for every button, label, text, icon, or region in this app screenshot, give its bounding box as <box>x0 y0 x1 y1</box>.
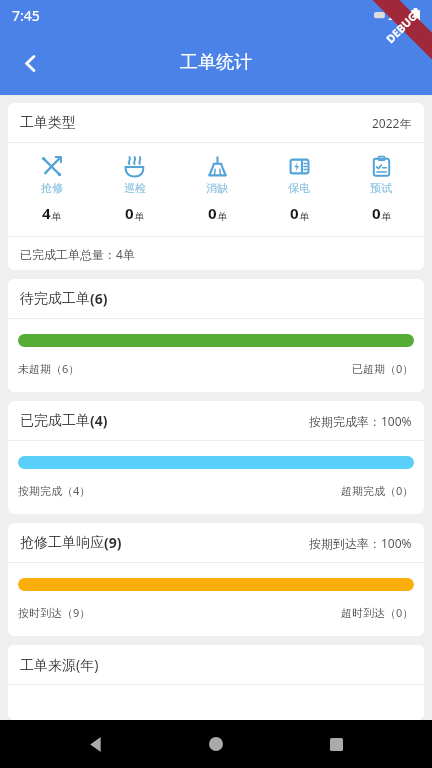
button[interactable]: 消缺 <box>176 154 258 223</box>
button[interactable]: Home <box>192 720 240 768</box>
staticText: 单 <box>134 210 144 223</box>
button[interactable]: 保电 <box>258 154 340 223</box>
button[interactable]: Recent apps <box>312 720 360 768</box>
staticText: 单 <box>51 210 61 223</box>
staticText: 7:45 <box>12 6 40 25</box>
staticText: 2022年 <box>372 115 412 131</box>
staticText: (6) <box>90 289 108 308</box>
button[interactable]: 抢修 <box>10 154 93 223</box>
staticText: 保电 <box>288 181 310 195</box>
staticText: 已超期（0） <box>352 361 414 376</box>
staticText: 单 <box>381 210 391 223</box>
staticText: DEBUG <box>383 9 420 46</box>
staticText: 超期完成（0） <box>341 483 414 498</box>
button[interactable]: Back <box>8 41 52 85</box>
staticText: 0 <box>290 203 299 223</box>
button[interactable]: 预试 <box>340 154 422 223</box>
staticText: 未超期（6） <box>18 361 80 376</box>
staticText: 0 <box>208 203 217 223</box>
staticText: 工单统计 <box>180 51 252 74</box>
staticText: 4 <box>42 203 51 223</box>
staticText: 超时到达（0） <box>341 605 414 620</box>
staticText: 工单来源(年) <box>20 655 99 674</box>
staticText: 预试 <box>370 181 392 195</box>
staticText: 抢修 <box>41 181 63 195</box>
staticText: 已完成工单总量：4单 <box>20 246 135 262</box>
staticText: 0 <box>125 203 134 223</box>
staticText: 按时到达（9） <box>18 605 91 620</box>
staticText: 工单类型 <box>20 114 76 132</box>
staticText: 单 <box>217 210 227 223</box>
staticText: 按期完成率：100% <box>309 413 412 429</box>
staticText: (4) <box>90 411 108 430</box>
staticText: 抢修工单响应 <box>20 534 104 552</box>
staticText: 单 <box>299 210 309 223</box>
staticText: 按期完成（4） <box>18 483 91 498</box>
button[interactable]: 已完成工单 <box>8 401 424 440</box>
staticText: 0 <box>372 203 381 223</box>
button[interactable]: 工单类型 <box>8 103 424 142</box>
staticText: (9) <box>104 533 122 552</box>
button[interactable]: 巡检 <box>93 154 176 223</box>
staticText: 消缺 <box>206 181 228 195</box>
staticText: 巡检 <box>124 181 146 195</box>
staticText: 按期到达率：100% <box>309 535 412 551</box>
staticText: 待完成工单 <box>20 290 90 308</box>
button[interactable]: Back <box>72 720 120 768</box>
button[interactable]: 待完成工单 <box>8 279 424 318</box>
button[interactable]: 工单来源(年) <box>8 645 424 684</box>
staticText: 已完成工单 <box>20 412 90 430</box>
button[interactable]: 抢修工单响应 <box>8 523 424 562</box>
